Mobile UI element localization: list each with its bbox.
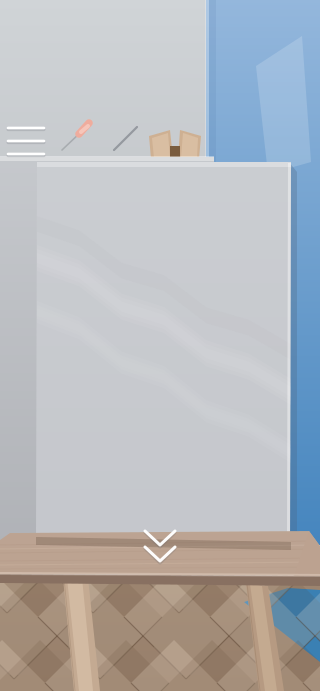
button[interactable]: Menu	[0, 0, 320, 691]
button[interactable]: Scroll down	[0, 0, 320, 691]
